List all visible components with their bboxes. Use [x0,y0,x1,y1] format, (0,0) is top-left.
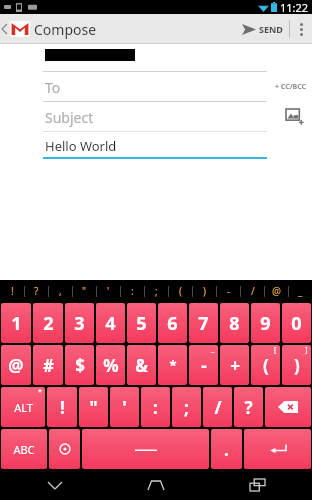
staticText: " [89,396,98,419]
staticText: 4 [105,311,116,336]
staticText: ! [60,396,65,419]
staticText: Compose [34,20,97,39]
staticText: + [230,354,240,377]
staticText: & [135,354,148,377]
button[interactable]: Home [141,470,171,500]
button[interactable]: Enter [244,429,311,469]
staticText: 1 [11,311,22,336]
button[interactable]: ! [47,387,77,427]
button[interactable]: 3 [65,303,94,343]
button[interactable]: + [220,345,249,385]
staticText: ? [34,284,39,298]
button[interactable]: 7 [189,303,218,343]
button[interactable]: " [73,280,96,302]
staticText: SEND [259,23,283,35]
button[interactable]: Delete [265,387,311,427]
button[interactable]: Subject [0,102,312,132]
button[interactable]: Hide keyboard [40,470,70,500]
button[interactable]: More options [290,14,312,44]
button[interactable]: & [127,345,156,385]
staticText: Subject [45,108,94,127]
button[interactable]: Attach picture [284,106,306,128]
button[interactable]: / [241,280,264,302]
button[interactable]: 2 [33,303,63,343]
button[interactable]: ? [25,280,48,302]
staticText: To [45,78,61,97]
button[interactable]: ABC [1,429,47,469]
staticText: / [214,396,222,419]
staticText: 9 [260,311,271,336]
button[interactable]: # [33,345,63,385]
staticText: - [201,354,207,377]
staticText: ] [305,345,308,355]
staticText: ( [263,354,269,377]
staticText: 8 [229,311,240,336]
staticText: _ [298,284,303,298]
button[interactable]: , [49,280,72,302]
button[interactable]: / [203,387,232,427]
button[interactable]: : [121,280,144,302]
staticText: ) [294,354,300,377]
button[interactable]: Space [82,429,209,469]
button[interactable]: Hello World [0,132,312,159]
staticText: _ [211,345,215,355]
staticText: ) [203,284,206,298]
button[interactable]: ( [251,345,280,385]
button[interactable]: ? [234,387,263,427]
staticText: @ [272,284,281,298]
button[interactable]: @ [1,345,31,385]
button[interactable]: . [211,429,242,469]
button[interactable]: 5 [127,303,156,343]
button[interactable]: 9 [251,303,280,343]
staticText: [ [274,345,277,355]
button[interactable]: Navigate up [2,14,30,44]
staticText: # [43,354,54,377]
button[interactable]: $ [65,345,94,385]
staticText: ! [11,284,14,298]
staticText: 5 [136,311,147,336]
staticText: ? [244,396,253,419]
button[interactable]: ! [0,280,24,302]
button[interactable]: 6 [158,303,187,343]
staticText: ' [122,396,127,419]
staticText: ; [184,396,189,419]
button[interactable]: ( [169,280,192,302]
staticText: , [59,284,62,298]
button[interactable]: " [79,387,108,427]
button[interactable]: To [0,72,312,102]
button[interactable]: ; [145,280,168,302]
button[interactable]: 4 [96,303,125,343]
button[interactable]: + CC/BCC [275,82,307,92]
button[interactable]: : [141,387,170,427]
button[interactable]: Recent apps [242,470,272,500]
staticText: % [103,354,119,377]
button[interactable]: Emoji [49,429,80,469]
button[interactable]: ; [172,387,201,427]
button[interactable]: ' [97,280,120,302]
staticText: 11:22 [280,0,309,14]
button[interactable]: _ [289,280,312,302]
button[interactable]: ) [282,345,311,385]
staticText: . [224,438,229,461]
staticText: - [227,284,231,298]
staticText: 6 [167,311,178,336]
button[interactable]: 1 [1,303,31,343]
button[interactable]: 8 [220,303,249,343]
button[interactable]: - [189,345,218,385]
button[interactable]: ) [193,280,216,302]
button[interactable]: * [158,345,187,385]
staticText: * [169,356,177,374]
staticText: : [131,284,134,298]
button[interactable]: ALT [1,387,45,427]
staticText: ; [155,284,158,298]
button[interactable]: - [217,280,240,302]
staticText: " [82,284,87,298]
staticText: ' [107,284,110,298]
button[interactable]: ' [110,387,139,427]
button[interactable]: SEND [236,14,289,44]
staticText: ALT [14,400,33,415]
button[interactable]: % [96,345,125,385]
button[interactable]: @ [265,280,288,302]
button[interactable]: 0 [282,303,311,343]
staticText: 0 [291,311,302,336]
